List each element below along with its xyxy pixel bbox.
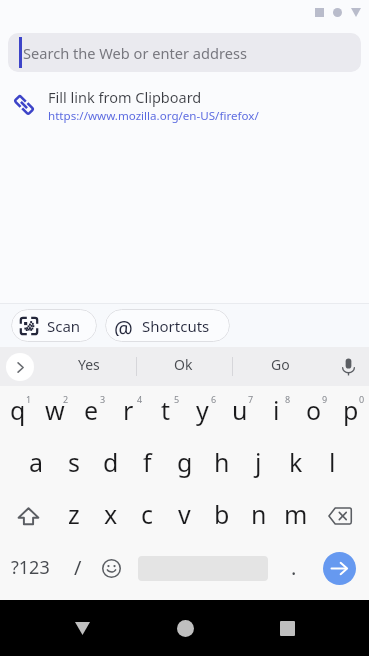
staticText: 7 <box>248 393 254 405</box>
button[interactable]: w <box>36 386 73 438</box>
button[interactable]: j <box>240 438 277 490</box>
button[interactable]: Voice input <box>327 347 369 386</box>
button[interactable]: r <box>110 386 147 438</box>
button[interactable]: u <box>221 386 258 438</box>
staticText: Yes <box>78 355 100 374</box>
staticText: Fill link from Clipboard <box>48 87 202 107</box>
staticText: 4 <box>137 393 143 405</box>
staticText: u <box>232 393 248 427</box>
staticText: y <box>196 393 209 427</box>
button[interactable]: g <box>166 438 203 490</box>
button[interactable]: p <box>332 386 369 438</box>
button[interactable]: s <box>55 438 92 490</box>
button[interactable]: f <box>129 438 166 490</box>
button[interactable]: ?123 <box>0 542 60 594</box>
button[interactable]: e <box>73 386 110 438</box>
button[interactable]: Yes <box>49 347 129 386</box>
button[interactable]: More suggestions <box>6 353 34 381</box>
staticText: . <box>291 554 297 581</box>
staticText: o <box>306 393 322 427</box>
staticText: k <box>289 445 303 479</box>
button[interactable]: v <box>166 490 203 542</box>
staticText: c <box>141 497 154 531</box>
button[interactable]: d <box>92 438 129 490</box>
button[interactable]: m <box>277 490 314 542</box>
button[interactable]: Fill link from Clipboard <box>0 86 369 124</box>
staticText: r <box>123 393 134 427</box>
staticText: m <box>284 497 308 531</box>
button[interactable]: Ok <box>143 347 223 386</box>
staticText: Ok <box>174 355 193 374</box>
button[interactable]: x <box>92 490 129 542</box>
staticText: d <box>103 445 119 479</box>
staticText: s <box>68 445 80 479</box>
button[interactable]: Backspace <box>314 490 369 542</box>
button[interactable]: Back <box>58 604 106 652</box>
staticText: a <box>29 445 44 479</box>
staticText: Scan <box>47 316 81 336</box>
button[interactable]: Go <box>240 347 320 386</box>
staticText: 8 <box>285 393 291 405</box>
button[interactable]: Search the Web or enter address <box>8 33 361 72</box>
staticText: n <box>251 497 267 531</box>
staticText: e <box>84 393 99 427</box>
staticText: 1 <box>26 393 32 405</box>
staticText: ?123 <box>11 555 50 580</box>
staticText: w <box>45 393 65 427</box>
staticText: @ <box>114 315 133 336</box>
staticText: h <box>214 445 230 479</box>
button[interactable]: / <box>60 542 96 594</box>
button[interactable]: y <box>184 386 221 438</box>
button[interactable]: Emoji <box>93 542 130 594</box>
staticText: f <box>143 445 152 479</box>
staticText: x <box>104 497 118 531</box>
button[interactable]: @ <box>105 309 230 342</box>
button[interactable]: q <box>0 386 36 438</box>
staticText: p <box>343 393 359 427</box>
button[interactable]: k <box>277 438 314 490</box>
staticText: l <box>329 445 336 479</box>
staticText: 9 <box>322 393 328 405</box>
button[interactable]: o <box>295 386 332 438</box>
button[interactable]: n <box>240 490 277 542</box>
button[interactable]: z <box>55 490 92 542</box>
staticText: i <box>273 393 280 427</box>
button[interactable]: Home <box>161 604 209 652</box>
staticText: Go <box>271 355 290 374</box>
button[interactable]: Shift <box>0 490 55 542</box>
staticText: b <box>214 497 230 531</box>
staticText: v <box>178 497 191 531</box>
staticText: 2 <box>63 393 69 405</box>
staticText: g <box>177 445 193 479</box>
button[interactable]: h <box>203 438 240 490</box>
button[interactable]: i <box>258 386 295 438</box>
button[interactable]: c <box>129 490 166 542</box>
button[interactable]: a <box>18 438 55 490</box>
button[interactable]: Scan <box>11 309 97 342</box>
staticText: 5 <box>174 393 180 405</box>
button[interactable]: l <box>314 438 351 490</box>
staticText: https://www.mozilla.org/en-US/firefox/ <box>48 108 259 124</box>
button[interactable]: Space <box>132 542 274 594</box>
staticText: q <box>10 393 26 427</box>
button[interactable]: Recents <box>263 604 311 652</box>
staticText: 3 <box>100 393 106 405</box>
button[interactable]: Go <box>313 542 365 594</box>
staticText: Shortcuts <box>142 316 210 336</box>
button[interactable]: t <box>147 386 184 438</box>
staticText: z <box>68 497 80 531</box>
staticText: / <box>74 554 82 581</box>
staticText: 0 <box>359 393 365 405</box>
button[interactable]: . <box>276 542 312 594</box>
button[interactable]: b <box>203 490 240 542</box>
staticText: t <box>161 393 171 427</box>
staticText: Search the Web or enter address <box>23 43 247 63</box>
staticText: 6 <box>211 393 217 405</box>
staticText: j <box>255 445 262 479</box>
